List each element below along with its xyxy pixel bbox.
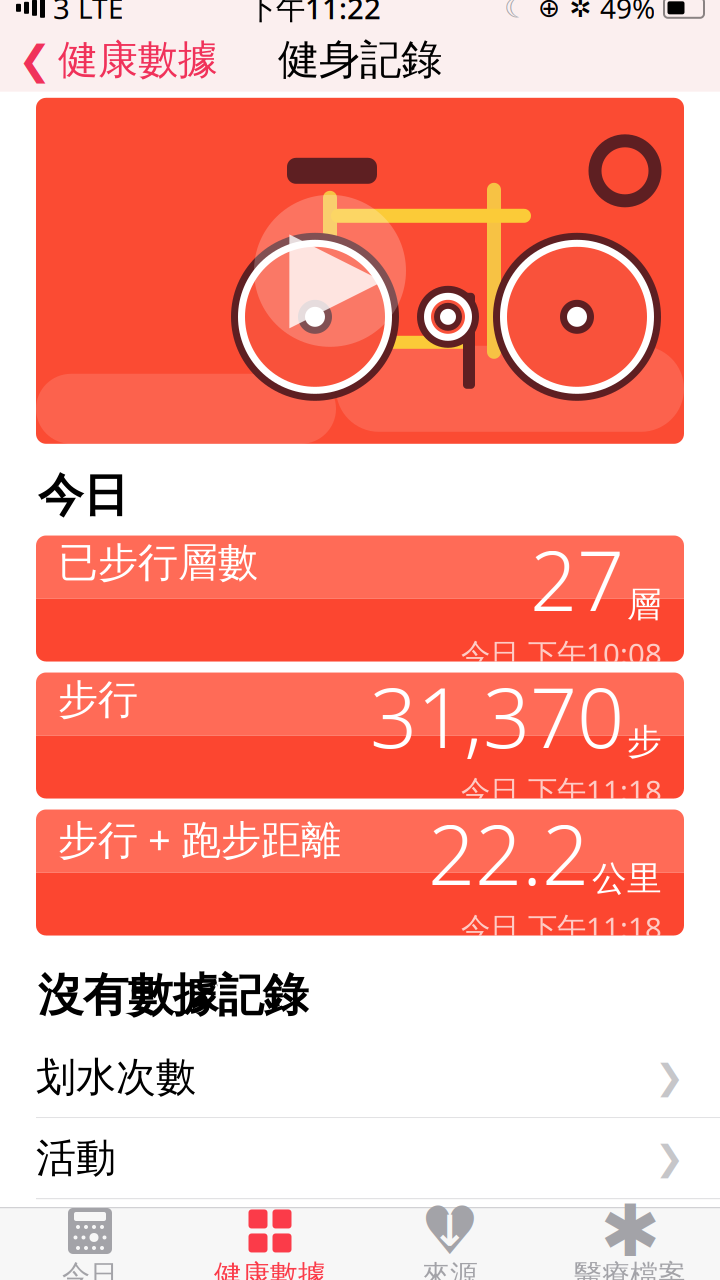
staticText: 27 xyxy=(530,524,624,634)
staticText: ☾ xyxy=(504,0,529,24)
staticText: ▶ xyxy=(289,201,383,340)
staticText: 公里 xyxy=(592,857,662,900)
staticText: ↓ xyxy=(432,1207,468,1255)
button[interactable]: 活動 xyxy=(0,1118,720,1199)
button[interactable]: 划水次數 xyxy=(0,1037,720,1118)
staticText: 醫療檔案 xyxy=(574,1258,686,1280)
staticText: 層 xyxy=(627,583,662,626)
staticText: 步行 xyxy=(58,675,138,724)
staticText: 今日 下午11:18 xyxy=(461,908,662,947)
staticText: 49% xyxy=(600,0,655,26)
staticText: ❯ xyxy=(655,1138,684,1178)
staticText: 活動 xyxy=(36,1134,116,1183)
staticText: 今日 下午11:18 xyxy=(461,771,662,810)
button[interactable]: ❮ xyxy=(0,27,218,92)
staticText: ⊕ xyxy=(538,0,560,23)
staticText: 下午11:22 xyxy=(247,0,381,27)
staticText: 健康數據 xyxy=(214,1258,326,1280)
button[interactable]: 健康數據 xyxy=(180,1208,360,1280)
button[interactable]: 步行 xyxy=(0,672,720,798)
staticText: 來源 xyxy=(422,1258,478,1280)
button[interactable]: 今日 xyxy=(0,1208,180,1280)
staticText: 今日 下午10:08 xyxy=(461,634,662,673)
staticText: 步行 + 跑步距離 xyxy=(58,812,341,865)
staticText: ✲ xyxy=(569,0,591,23)
staticText: 31,370 xyxy=(370,661,624,771)
staticText: 今日 xyxy=(62,1258,118,1280)
button[interactable]: 步行 + 跑步距離 xyxy=(0,809,720,935)
staticText: 健身記錄 xyxy=(278,34,442,85)
button[interactable]: 已步行層數 xyxy=(0,535,720,661)
staticText: ❮ xyxy=(18,37,52,82)
staticText: 健康數據 xyxy=(58,35,218,84)
staticText: 步 xyxy=(627,720,662,763)
staticText: ♥ xyxy=(420,1193,480,1269)
staticText: LTE xyxy=(78,0,124,26)
button[interactable]: ♥ xyxy=(360,1208,540,1280)
staticText: ❯ xyxy=(655,1057,684,1097)
button[interactable]: ✱ xyxy=(540,1208,720,1280)
staticText: 沒有數據記錄 xyxy=(38,967,308,1023)
staticText: 划水次數 xyxy=(36,1053,196,1102)
button[interactable]: 播放健身記錄影片 xyxy=(0,98,720,444)
staticText: ✱ xyxy=(600,1190,660,1272)
staticText: 3 xyxy=(53,0,70,27)
staticText: 今日 xyxy=(38,468,128,523)
staticText: 已步行層數 xyxy=(58,538,258,587)
staticText: 22.2 xyxy=(428,798,589,908)
